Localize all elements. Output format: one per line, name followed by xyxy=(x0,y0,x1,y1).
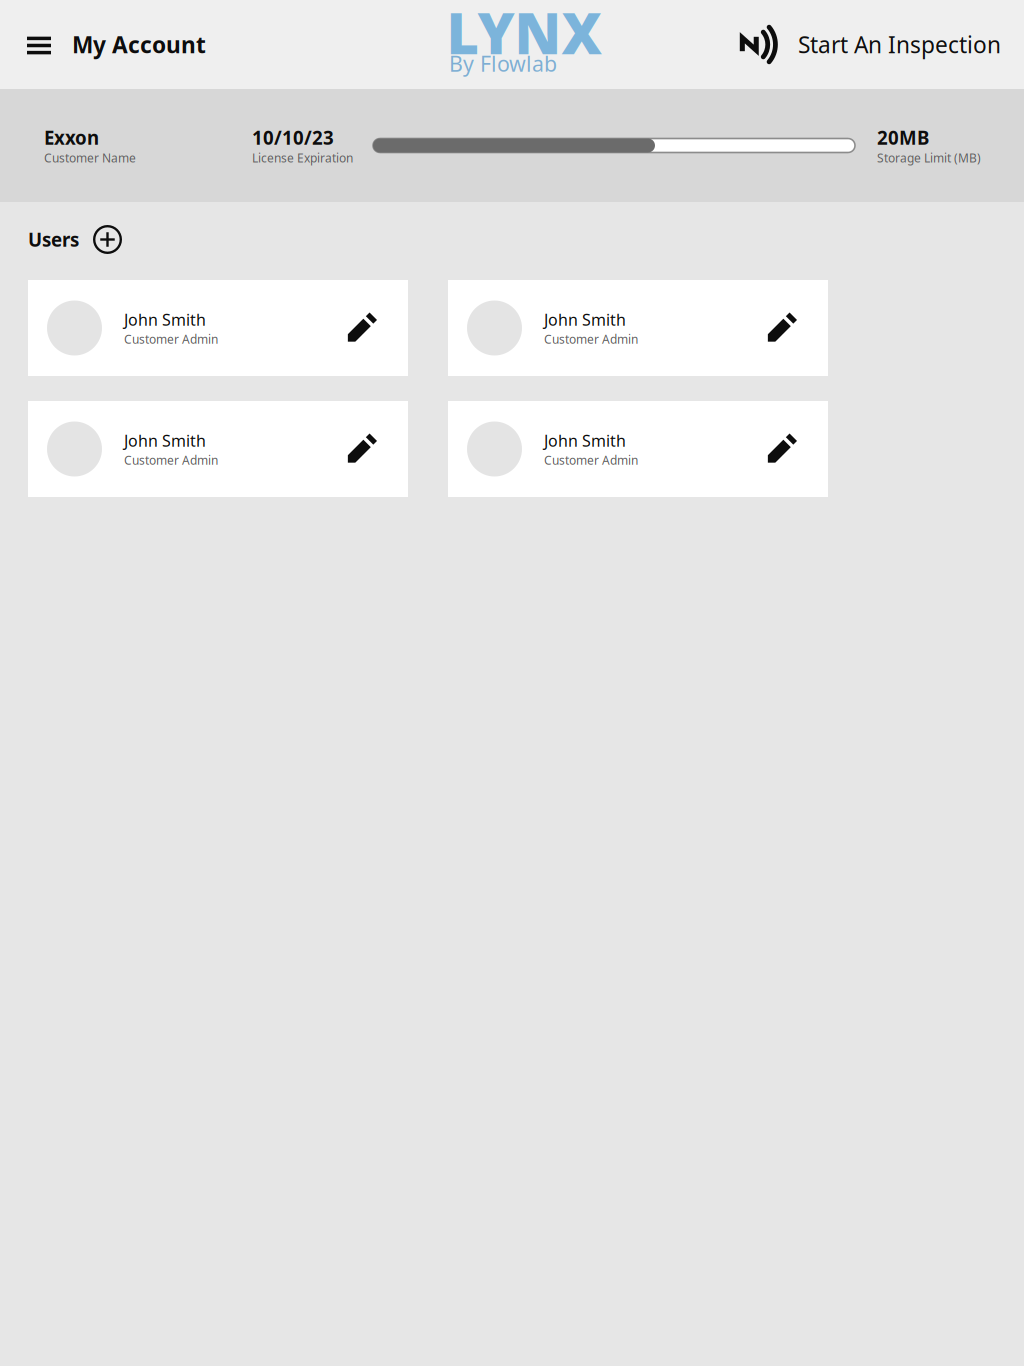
staticText: John Smith xyxy=(124,309,206,330)
staticText: Users xyxy=(28,227,79,252)
staticText: My Account xyxy=(72,29,206,59)
button[interactable]: Edit John Smith xyxy=(752,401,828,497)
staticText: Customer Name xyxy=(44,150,136,166)
staticText: Start An Inspection xyxy=(798,29,1001,59)
button[interactable]: Start An Inspection xyxy=(738,0,1024,89)
button[interactable]: John Smith xyxy=(28,401,408,497)
staticText: Customer Admin xyxy=(124,331,218,347)
staticText: Customer Admin xyxy=(544,331,638,347)
button[interactable]: Edit John Smith xyxy=(332,401,408,497)
button[interactable]: Menu xyxy=(0,0,72,89)
button[interactable]: Edit John Smith xyxy=(752,280,828,376)
staticText: Customer Admin xyxy=(124,452,218,468)
staticText: Customer Admin xyxy=(544,452,638,468)
staticText: LYNX xyxy=(446,0,601,70)
staticText: John Smith xyxy=(544,430,626,451)
staticText: 20MB xyxy=(877,125,929,150)
staticText: By Flowlab xyxy=(449,49,557,78)
button[interactable]: John Smith xyxy=(28,280,408,376)
staticText: Storage Limit (MB) xyxy=(877,150,981,166)
staticText: Exxon xyxy=(44,125,99,150)
button[interactable]: Add user xyxy=(93,225,122,254)
staticText: John Smith xyxy=(544,309,626,330)
button[interactable]: John Smith xyxy=(448,280,828,376)
staticText: 10/10/23 xyxy=(252,125,334,150)
button[interactable]: John Smith xyxy=(448,401,828,497)
staticText: License Expiration xyxy=(252,150,353,166)
button[interactable]: Edit John Smith xyxy=(332,280,408,376)
staticText: John Smith xyxy=(124,430,206,451)
